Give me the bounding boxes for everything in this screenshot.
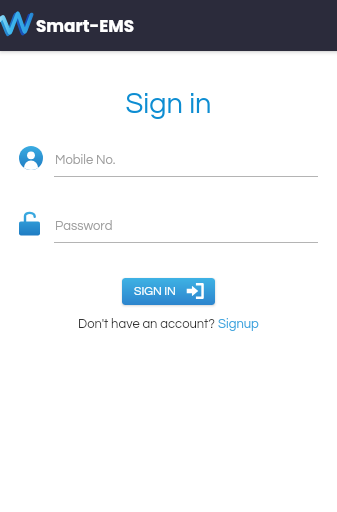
staticText: Mobile No.: [55, 153, 116, 166]
staticText: Sign in: [0, 89, 337, 119]
button[interactable]: Signup: [218, 317, 259, 330]
other: Smart-EMS logo: [0, 0, 36, 51]
staticText: Smart-EMS: [36, 14, 135, 38]
other: Password: [19, 212, 40, 236]
staticText: SIGN IN: [134, 285, 176, 297]
other: Mobile number: [19, 146, 43, 170]
staticText: Don't have an account?: [78, 317, 218, 330]
staticText: Password: [55, 219, 113, 232]
button[interactable]: SIGN IN: [122, 278, 215, 305]
staticText: Signup: [218, 317, 259, 330]
